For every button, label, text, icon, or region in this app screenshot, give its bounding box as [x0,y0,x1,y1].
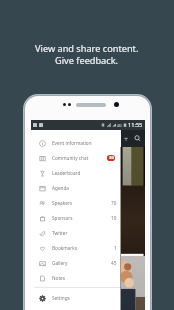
button[interactable]: Speakers [31,195,121,210]
button[interactable]: Filter [123,136,129,142]
staticText: Leaderboard [52,170,81,176]
staticText: 30 [109,155,114,161]
staticText: Settings [52,295,70,301]
button[interactable]: Bookmarks [31,240,121,255]
staticText: Speakers [52,200,73,206]
staticText: Gallery [52,260,68,266]
staticText: Sponsors [52,215,73,221]
staticText: 11:55 [128,121,143,129]
button[interactable]: Gallery [31,255,121,270]
staticText: Twitter [52,230,68,236]
staticText: Give feedback. [55,54,119,67]
button[interactable]: Twitter [31,225,121,240]
staticText: 10 [111,215,117,221]
staticText: Event information [52,140,92,146]
staticText: 1 [114,245,117,251]
staticText: Bookmarks [52,245,77,251]
button[interactable]: Leaderboard [31,165,121,180]
staticText: View and share content. [35,42,139,55]
staticText: 45 [111,260,117,266]
button[interactable]: Sponsors [31,210,121,225]
staticText: 70 [111,200,117,206]
staticText: Community chat [52,155,89,161]
button[interactable]: Community chat [31,150,121,165]
button[interactable]: Notes [31,270,121,285]
button[interactable]: Agenda [31,180,121,195]
staticText: 4G [117,123,122,128]
button[interactable]: Event information [31,135,121,150]
button[interactable]: Search [134,135,141,142]
staticText: Agenda [52,185,69,191]
staticText: Notes [52,275,65,281]
button[interactable]: Settings [31,290,121,305]
